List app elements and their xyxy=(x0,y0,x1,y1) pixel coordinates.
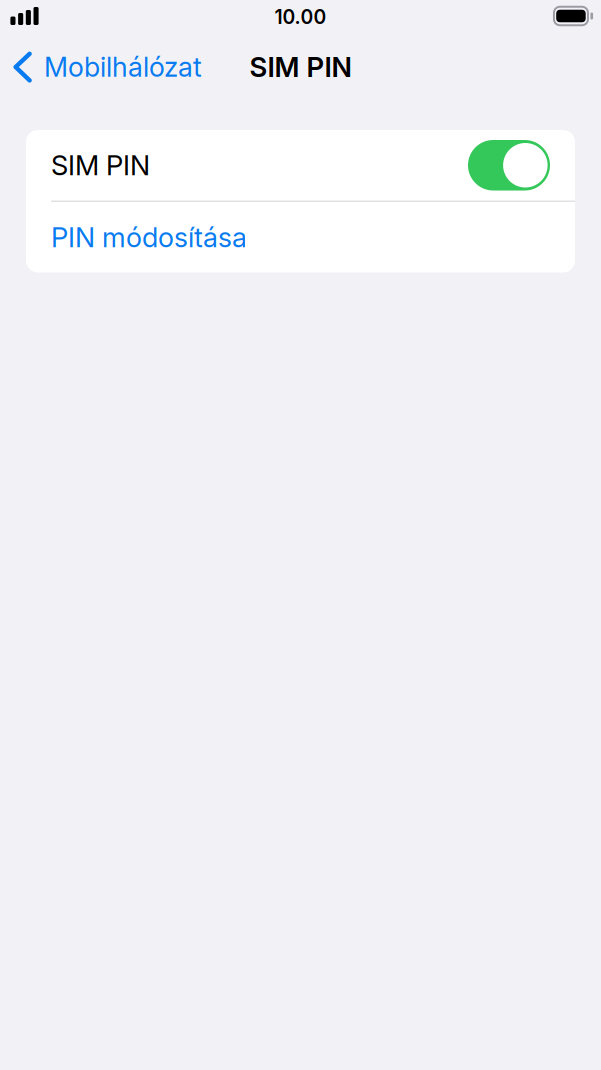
staticText: SIM PIN xyxy=(51,149,150,182)
button[interactable]: SIM PIN xyxy=(26,130,575,200)
staticText: SIM PIN xyxy=(249,50,351,84)
staticText: Mobilhálózat xyxy=(44,51,202,83)
button[interactable]: Vissza: Mobilhálózat xyxy=(0,45,202,89)
staticText: 10.00 xyxy=(274,5,326,29)
button[interactable]: PIN módosítása xyxy=(26,202,575,272)
staticText: PIN módosítása xyxy=(51,221,247,254)
